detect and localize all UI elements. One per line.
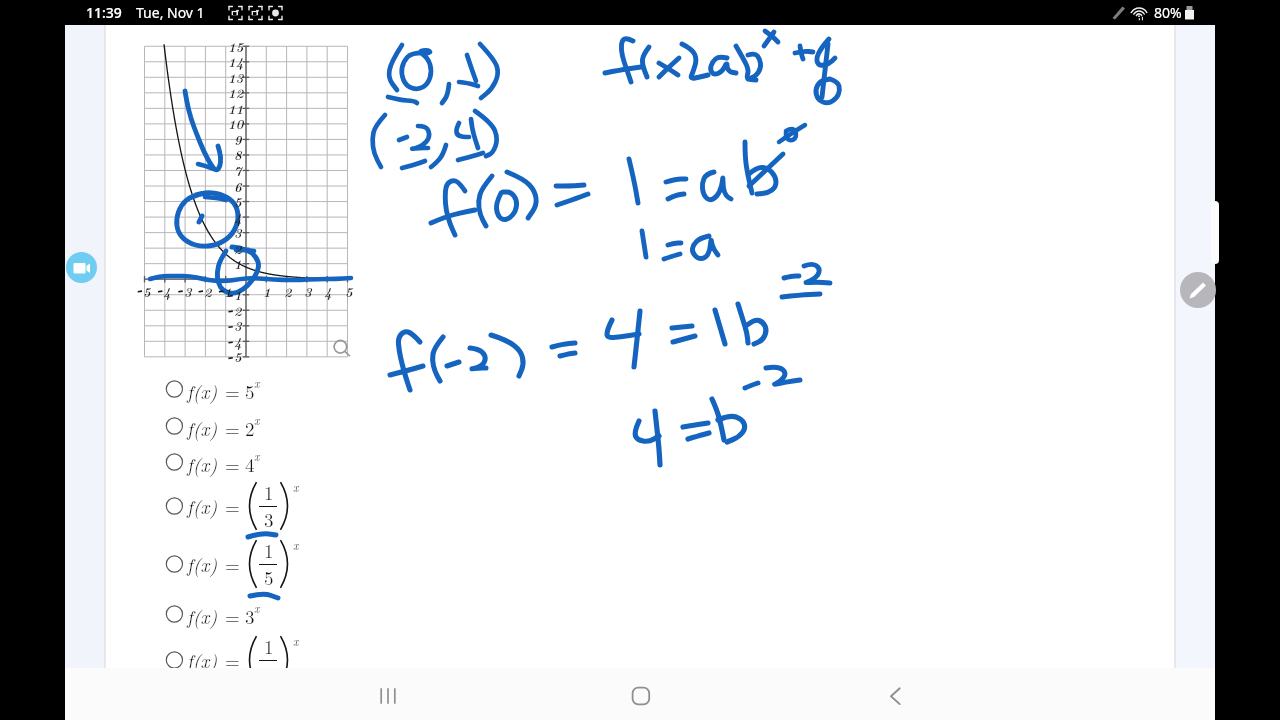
staticText: 10 — [228, 114, 244, 133]
staticText: 4 — [234, 208, 242, 227]
staticText: f(x) — [187, 551, 218, 578]
staticText: x — [293, 536, 299, 553]
staticText: 14 — [228, 52, 244, 71]
staticText: 11 — [228, 99, 244, 118]
staticText: x — [293, 632, 299, 649]
staticText: 5 — [345, 282, 353, 301]
staticText: 1 — [264, 479, 274, 506]
staticText: 2 — [234, 301, 242, 320]
staticText: f(x) — [187, 378, 218, 405]
staticText: 5 — [234, 347, 242, 366]
staticText: 5 — [143, 282, 151, 301]
staticText: = — [225, 451, 240, 478]
button[interactable]: Back — [870, 670, 918, 718]
button[interactable]: Recents — [364, 670, 412, 718]
button[interactable]: f(x) — [160, 526, 350, 602]
button[interactable]: f(x) — [160, 351, 350, 427]
staticText: 80% — [1154, 3, 1182, 22]
staticText: 5 — [234, 192, 242, 211]
staticText: 3 — [234, 316, 242, 335]
staticText: 4 — [163, 282, 171, 301]
staticText: 8 — [234, 145, 242, 164]
staticText: 3 — [184, 282, 192, 301]
staticText: 4 — [234, 332, 242, 351]
staticText: 3 — [304, 282, 312, 301]
staticText: = — [225, 647, 240, 674]
staticText: 6 — [234, 177, 242, 196]
staticText: 3 — [264, 506, 274, 533]
staticText: 4 — [245, 451, 255, 478]
staticText: 2 — [234, 239, 242, 258]
staticText: 11:39 — [86, 3, 122, 22]
button[interactable]: f(x) — [160, 424, 350, 500]
staticText: 1 — [264, 633, 274, 660]
staticText: x — [254, 374, 260, 391]
staticText: Tue, Nov 1 — [136, 3, 205, 22]
staticText: 1 — [263, 282, 271, 301]
staticText: = — [225, 493, 240, 520]
staticText: 1 — [234, 254, 242, 273]
staticText: 13 — [228, 68, 244, 87]
staticText: 15 — [228, 37, 244, 56]
staticText: 3 — [245, 603, 255, 630]
staticText: x — [254, 599, 260, 616]
staticText: f(x) — [187, 493, 218, 520]
staticText: 2 — [204, 282, 212, 301]
staticText: 2 — [284, 282, 292, 301]
button[interactable]: Video call — [66, 252, 97, 283]
staticText: 1 — [234, 285, 242, 304]
staticText: 2 — [264, 660, 274, 687]
staticText: = — [225, 378, 240, 405]
staticText: f(x) — [187, 415, 218, 442]
staticText: 7 — [234, 161, 242, 180]
staticText: 9 — [234, 130, 242, 149]
staticText: x — [254, 411, 260, 428]
staticText: 4 — [324, 282, 332, 301]
button[interactable]: f(x) — [160, 388, 350, 464]
staticText: f(x) — [187, 647, 218, 674]
staticText: = — [225, 603, 240, 630]
staticText: 3 — [234, 223, 242, 242]
staticText: x — [293, 478, 299, 495]
staticText: 2 — [245, 415, 255, 442]
staticText: 1 — [264, 537, 274, 564]
staticText: = — [225, 551, 240, 578]
button[interactable]: Edit with pen — [1180, 272, 1216, 308]
staticText: 5 — [245, 378, 255, 405]
staticText: 5 — [264, 564, 274, 591]
button[interactable]: f(x) — [160, 468, 350, 544]
staticText: f(x) — [187, 451, 218, 478]
staticText: x — [254, 447, 260, 464]
staticText: 12 — [228, 83, 244, 102]
button[interactable]: f(x) — [160, 622, 350, 698]
staticText: f(x) — [187, 603, 218, 630]
staticText: 1 — [224, 282, 232, 301]
staticText: = — [225, 415, 240, 442]
button[interactable]: Home — [616, 670, 664, 718]
button[interactable]: f(x) — [160, 576, 350, 652]
